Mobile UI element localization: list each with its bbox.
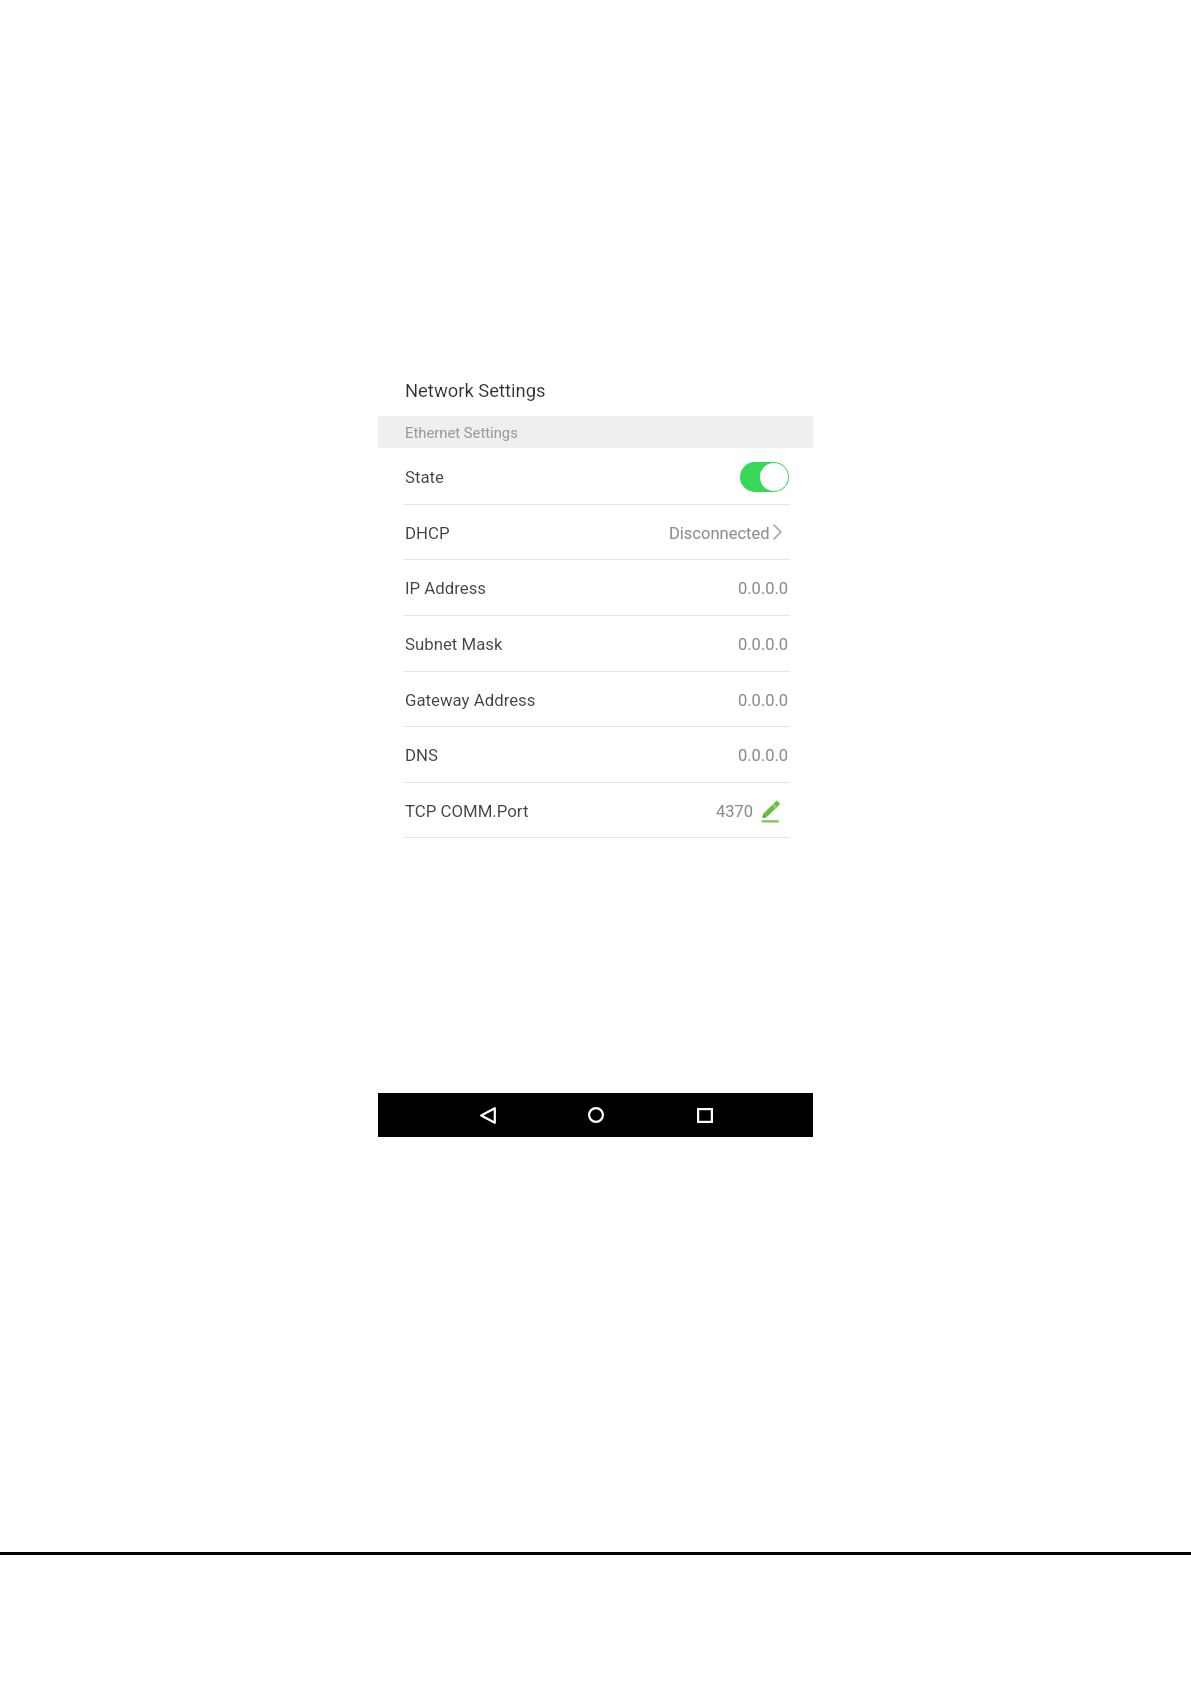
- staticText: 4370: [716, 802, 754, 821]
- button[interactable]: Network Settings: [405, 380, 546, 402]
- staticText: IP Address: [405, 578, 487, 598]
- staticText: 0.0.0.0: [738, 691, 789, 710]
- button[interactable]: DHCP: [378, 505, 813, 561]
- button[interactable]: State: [378, 449, 813, 505]
- staticText: 0.0.0.0: [738, 746, 789, 765]
- button[interactable]: State enabled: [740, 462, 789, 492]
- button[interactable]: IP Address: [378, 560, 813, 616]
- button[interactable]: Gateway Address: [378, 672, 813, 728]
- staticText: TCP COMM.Port: [405, 801, 529, 821]
- staticText: Ethernet Settings: [405, 424, 518, 441]
- button[interactable]: Edit TCP COMM. Port: [761, 801, 779, 822]
- button[interactable]: Subnet Mask: [378, 616, 813, 672]
- staticText: Subnet Mask: [405, 634, 503, 654]
- staticText: 0.0.0.0: [738, 635, 789, 654]
- staticText: 0.0.0.0: [738, 579, 789, 598]
- button[interactable]: Recent apps: [669, 1093, 741, 1137]
- button[interactable]: Back: [452, 1093, 524, 1137]
- staticText: Gateway Address: [405, 690, 536, 710]
- staticText: Network Settings: [405, 380, 546, 402]
- staticText: State: [405, 467, 445, 487]
- staticText: DHCP: [405, 523, 450, 543]
- button[interactable]: DNS: [378, 727, 813, 783]
- staticText: DNS: [405, 745, 438, 765]
- staticText: Disconnected: [669, 524, 770, 543]
- button[interactable]: Home: [560, 1093, 632, 1137]
- button[interactable]: TCP COMM.Port: [378, 783, 813, 839]
